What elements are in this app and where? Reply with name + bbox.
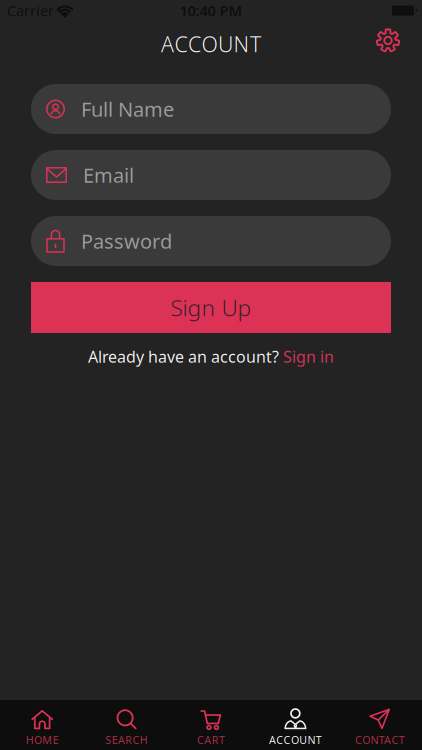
button[interactable]: Sign Up [31, 282, 391, 333]
button[interactable]: HOME [0, 700, 84, 750]
staticText: Password [81, 228, 172, 254]
button[interactable]: Settings [376, 28, 422, 59]
staticText: Sign Up [170, 292, 251, 322]
staticText: Carrier [7, 1, 54, 20]
staticText: ACCOUNT [161, 30, 261, 58]
button[interactable]: Sign in [283, 346, 334, 367]
staticText: Sign in [283, 346, 334, 367]
staticText: Already have an account? [88, 346, 279, 367]
button[interactable]: SEARCH [84, 700, 169, 750]
button[interactable]: Email [31, 150, 391, 200]
staticText: Full Name [81, 96, 174, 122]
staticText: ACCOUNT [269, 733, 322, 747]
button[interactable]: Password [31, 216, 391, 266]
staticText: SEARCH [105, 733, 148, 747]
button[interactable]: CART [169, 700, 253, 750]
staticText: CONTACT [355, 733, 405, 747]
button[interactable]: ACCOUNT [253, 700, 338, 750]
staticText: 10:40 PM [179, 1, 242, 20]
staticText: CART [197, 733, 225, 747]
button[interactable]: Full Name [31, 84, 391, 134]
button[interactable]: CONTACT [338, 700, 422, 750]
staticText: Email [83, 162, 134, 188]
staticText: HOME [26, 733, 59, 747]
